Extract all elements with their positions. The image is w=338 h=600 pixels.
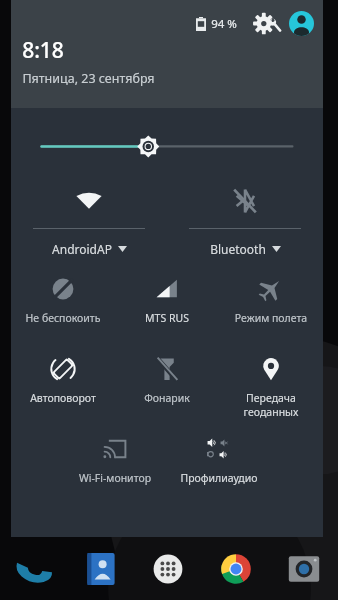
button[interactable]: Wi-Fi-монитор [63, 425, 167, 485]
button[interactable]: Передача геоданных [219, 345, 323, 419]
staticText: 94 % [211, 16, 237, 32]
button[interactable]: Профилиаудио [167, 425, 271, 485]
staticText: AndroidAP [52, 241, 112, 257]
button[interactable]: AndroidAP [11, 170, 167, 257]
button[interactable]: Phone [0, 537, 67, 600]
button[interactable]: Switch user [289, 11, 314, 36]
staticText: Не беспокоить [12, 311, 114, 325]
staticText: 8:18 [22, 36, 64, 65]
staticText: Передача геоданных [220, 391, 322, 419]
button[interactable]: Режим полета [219, 265, 323, 325]
button[interactable]: Bluetooth [167, 170, 323, 257]
staticText: Фонарик [116, 391, 218, 405]
button[interactable]: Contacts [67, 537, 134, 600]
button[interactable]: Chrome [202, 537, 270, 600]
button[interactable]: Apps [134, 537, 202, 600]
button[interactable]: Camera [270, 537, 338, 600]
staticText: MTS RUS [116, 311, 218, 325]
button[interactable]: Settings [252, 12, 284, 36]
staticText: Bluetooth [210, 241, 266, 257]
staticText: Wi-Fi-монитор [64, 471, 166, 485]
staticText: Пятница, 23 сентября [22, 70, 155, 87]
button[interactable]: Brightness [11, 108, 323, 170]
button[interactable]: Автоповорот [11, 345, 115, 405]
button[interactable]: Не беспокоить [11, 265, 115, 325]
button[interactable]: MTS RUS [115, 265, 219, 325]
staticText: Автоповорот [12, 391, 114, 405]
staticText: Режим полета [220, 311, 322, 325]
button[interactable]: Фонарик [115, 345, 219, 405]
staticText: Профилиаудио [168, 471, 270, 485]
